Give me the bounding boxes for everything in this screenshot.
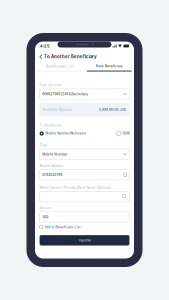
staticText: 0784532789 <box>42 173 62 177</box>
staticText: Mobile Number/Nickname <box>46 132 87 135</box>
staticText: Wallet Service Provider/Bank Name (Optio… <box>40 186 112 189</box>
staticText: Transfer <box>78 238 91 242</box>
staticText: From Account <box>40 83 62 87</box>
staticText: Mobile Number <box>40 164 64 168</box>
staticText: 4:25 <box>40 44 50 48</box>
button[interactable]: Transfer <box>40 235 129 245</box>
staticText: To Another Beneficiary <box>44 54 97 59</box>
staticText: To Beneficiary <box>40 124 63 127</box>
staticText: 60862798522453|Secondary <box>42 92 88 96</box>
button[interactable]: Beneficiaries List <box>35 63 84 73</box>
staticText: IBAN <box>122 132 129 135</box>
button[interactable]: Mobile Number/Nickname <box>40 129 87 138</box>
staticText: 3,999,967.95 JOD <box>99 108 126 111</box>
staticText: Mobile Number <box>42 152 67 156</box>
staticText: New Beneficiary <box>96 64 123 68</box>
staticText: Amount <box>40 206 52 210</box>
button[interactable]: To Another Beneficiary <box>35 50 134 63</box>
staticText: Available Balance <box>43 108 72 111</box>
staticText: Add to Beneficiary List <box>45 225 81 229</box>
button[interactable]: IBAN <box>116 129 129 138</box>
button[interactable]: New Beneficiary <box>84 63 134 73</box>
button[interactable]: Add to Beneficiary List <box>40 224 129 230</box>
staticText: Beneficiaries List <box>46 64 74 68</box>
staticText: Type <box>40 143 48 147</box>
staticText: 300 <box>42 215 48 219</box>
